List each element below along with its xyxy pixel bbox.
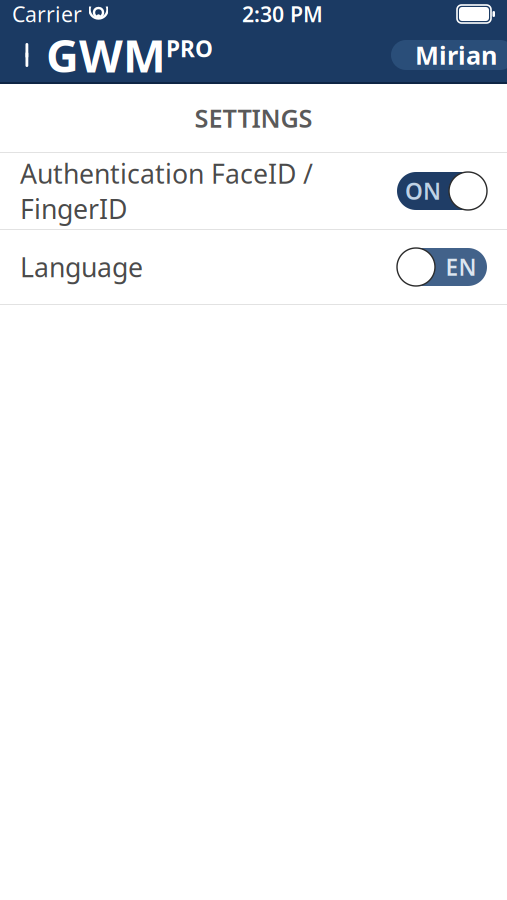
staticText: SETTINGS xyxy=(194,101,312,135)
staticText: Carrier xyxy=(12,0,82,28)
button[interactable]: Authentication FaceID / FingerID xyxy=(0,153,507,229)
staticText: Authentication FaceID / FingerID xyxy=(20,156,313,226)
staticText: GWM xyxy=(46,25,166,85)
staticText: EN xyxy=(445,252,476,282)
staticText: Mirian xyxy=(415,38,497,72)
staticText: Language xyxy=(20,249,143,285)
staticText: PRO xyxy=(166,33,213,63)
staticText: 2:30 PM xyxy=(242,0,323,28)
button[interactable]: Mirian xyxy=(391,40,507,70)
staticText: ON xyxy=(405,176,441,206)
button[interactable]: Back xyxy=(12,33,46,77)
button[interactable]: Language xyxy=(0,230,507,304)
